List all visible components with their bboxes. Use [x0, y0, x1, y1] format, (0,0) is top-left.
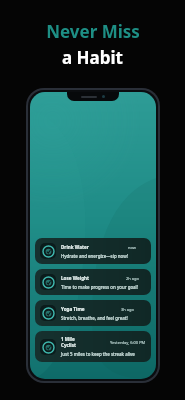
staticText: Lose Weight — [61, 275, 90, 281]
staticText: Stretch, breathe, and feel great! — [61, 315, 128, 321]
staticText: Yoga Time — [61, 306, 85, 312]
staticText: Drink Water — [61, 244, 89, 250]
other: Habit reminder — [40, 243, 56, 259]
staticText: a Habit — [62, 46, 123, 69]
staticText: now — [128, 245, 136, 250]
staticText: Hydrate and energize—sip now! — [61, 253, 128, 259]
other: Habit reminder — [40, 305, 56, 321]
staticText: 2h ago — [126, 276, 139, 281]
staticText: Yesterday, 6:00 PM — [110, 340, 146, 345]
staticText: Never Miss — [46, 20, 140, 43]
button[interactable]: Habit reminder — [35, 238, 151, 264]
staticText: 1 Mile Cyclist — [61, 336, 85, 348]
button[interactable]: Habit reminder — [35, 331, 151, 362]
staticText: 3h ago — [121, 307, 134, 312]
button[interactable]: Habit reminder — [35, 300, 151, 326]
button[interactable]: Habit reminder — [35, 269, 151, 295]
staticText: Just 5 miles to keep the streak alive — [61, 351, 135, 357]
staticText: Time to make progress on your goal! — [61, 284, 138, 290]
other: Habit reminder — [40, 274, 56, 290]
other: Habit reminder — [40, 339, 56, 355]
